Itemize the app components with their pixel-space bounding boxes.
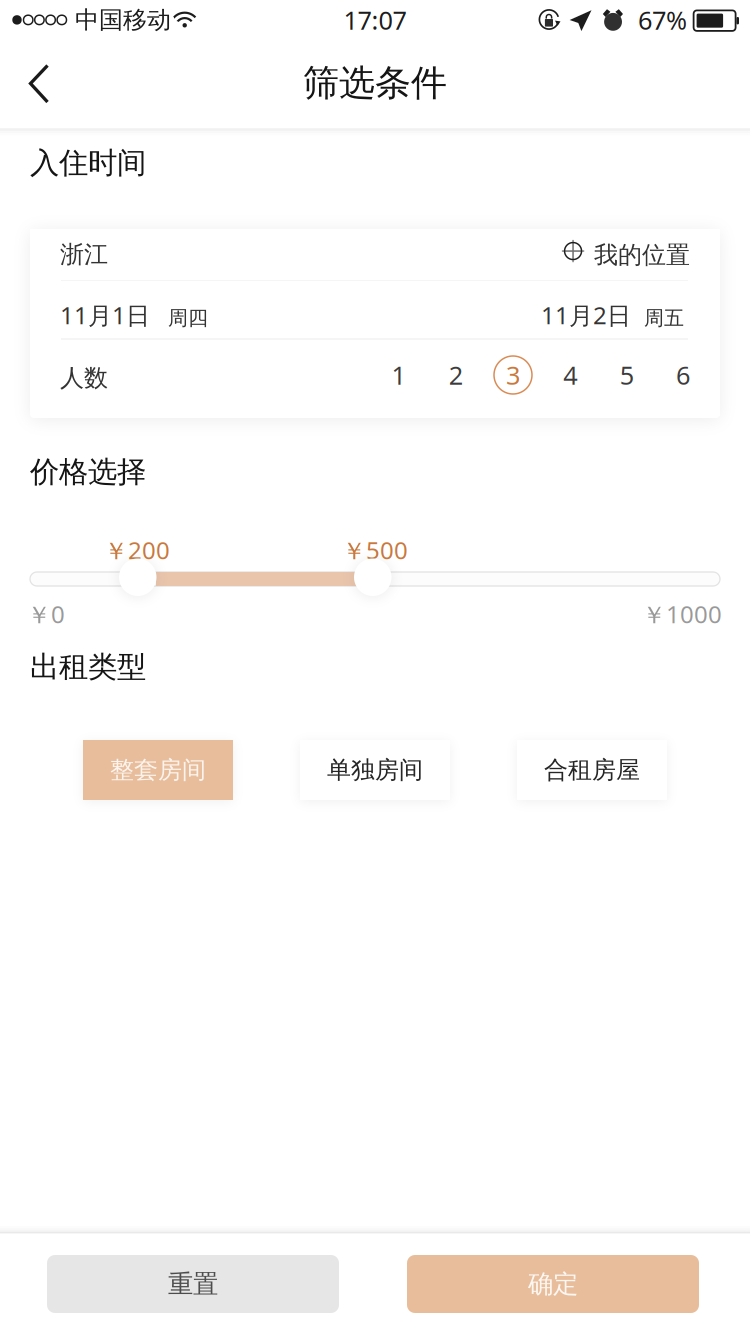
staticText: 出租类型	[30, 649, 146, 685]
staticText: 2	[449, 358, 463, 392]
staticText: 浙江	[60, 240, 108, 269]
staticText: 周五	[644, 306, 684, 330]
staticText: 4	[563, 358, 577, 392]
staticText: 11月2日	[541, 299, 631, 331]
staticText: ￥0	[27, 598, 65, 630]
button[interactable]: 1	[372, 349, 424, 401]
staticText: 入住时间	[30, 145, 146, 181]
staticText: 3	[506, 358, 520, 392]
staticText: 1	[391, 358, 405, 392]
staticText: 筛选条件	[303, 61, 447, 105]
staticText: 6	[676, 358, 690, 392]
staticText: 合租房屋	[544, 755, 640, 785]
staticText: 中国移动	[75, 5, 171, 35]
staticText: ￥1000	[642, 598, 722, 630]
button[interactable]: 合租房屋	[517, 740, 667, 800]
button[interactable]: 确定	[407, 1255, 699, 1313]
staticText: 整套房间	[110, 755, 206, 785]
staticText: 人数	[60, 363, 108, 393]
staticText: 5	[620, 358, 634, 392]
button[interactable]: 重置	[47, 1255, 339, 1313]
staticText: 单独房间	[327, 755, 423, 785]
staticText: 17:07	[343, 3, 406, 37]
button[interactable]: 浙江	[30, 229, 720, 281]
staticText: 11月1日	[60, 299, 150, 331]
button[interactable]: 4	[544, 349, 596, 401]
button[interactable]: 2	[430, 349, 482, 401]
staticText: 重置	[168, 1268, 218, 1299]
staticText: 确定	[528, 1268, 578, 1299]
staticText: 周四	[168, 306, 208, 330]
button[interactable]: 3	[487, 349, 539, 401]
staticText: ￥200	[104, 534, 170, 566]
staticText: 67%	[638, 3, 687, 37]
staticText: 价格选择	[30, 454, 146, 490]
staticText: 我的位置	[594, 240, 690, 270]
button[interactable]: 5	[601, 349, 653, 401]
button[interactable]: 11月1日	[30, 281, 720, 339]
button[interactable]: 返回	[0, 40, 78, 128]
button[interactable]: 整套房间	[83, 740, 233, 800]
staticText: ￥500	[342, 534, 408, 566]
button[interactable]: 6	[657, 349, 709, 401]
button[interactable]: 单独房间	[300, 740, 450, 800]
